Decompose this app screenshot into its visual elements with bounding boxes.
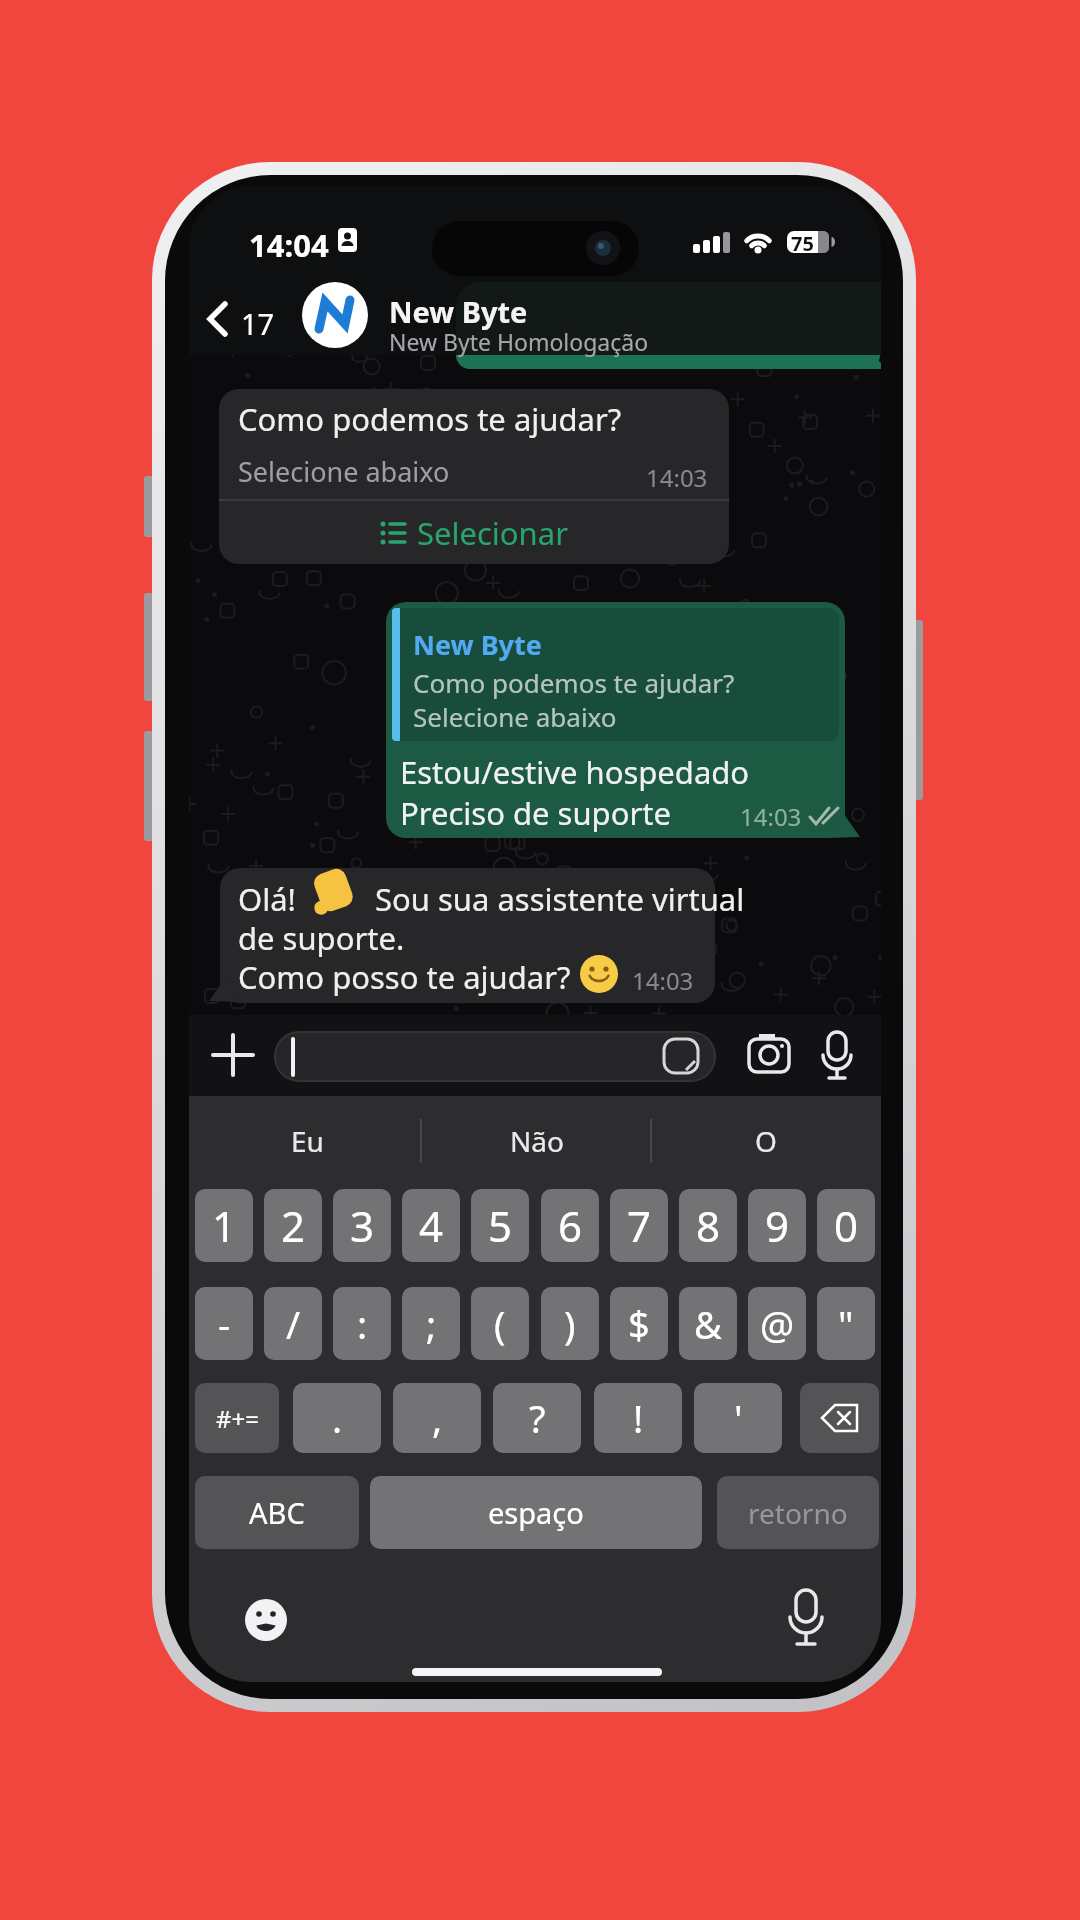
button[interactable]: ABC — [195, 1476, 359, 1549]
button[interactable]: - — [195, 1287, 253, 1360]
button[interactable] — [220, 868, 715, 1003]
button[interactable]: espaço — [370, 1476, 702, 1549]
staticText: Selecione abaixo — [413, 699, 617, 734]
staticText: espaço — [488, 1493, 584, 1532]
staticText: / — [286, 1298, 301, 1350]
button[interactable]: ? — [493, 1383, 581, 1453]
button[interactable] — [781, 1590, 831, 1646]
button[interactable]: 9 — [748, 1189, 806, 1262]
staticText: 0 — [834, 1197, 859, 1254]
button[interactable] — [741, 1031, 796, 1081]
staticText: New Byte Homologação — [389, 326, 649, 357]
button[interactable] — [302, 282, 368, 348]
button[interactable]: " — [817, 1287, 875, 1360]
button[interactable] — [800, 1383, 879, 1453]
staticText: . — [332, 1392, 343, 1444]
staticText: 14:03 — [632, 964, 694, 997]
button[interactable]: #+= — [195, 1383, 279, 1453]
staticText: Selecione abaixo — [238, 453, 450, 490]
staticText: Preciso de suporte — [400, 792, 671, 834]
button[interactable]: $ — [610, 1287, 668, 1360]
staticText: Eu — [291, 1122, 324, 1160]
staticText: 1 — [212, 1197, 237, 1254]
button[interactable]: 7 — [610, 1189, 668, 1262]
staticText: Não — [510, 1122, 564, 1160]
button[interactable]: Eu — [247, 1119, 367, 1163]
staticText: New Byte — [413, 626, 542, 663]
staticText: ' — [734, 1392, 743, 1444]
staticText: Como podemos te ajudar? — [413, 665, 735, 700]
staticText: 14:04 — [249, 224, 329, 266]
staticText: Selecionar — [417, 512, 568, 554]
button[interactable]: / — [264, 1287, 322, 1360]
button[interactable] — [274, 1031, 716, 1082]
button[interactable]: O — [706, 1119, 826, 1163]
staticText: & — [694, 1298, 722, 1350]
button[interactable]: 5 — [471, 1189, 529, 1262]
staticText: O — [755, 1122, 777, 1160]
staticText: 2 — [281, 1197, 306, 1254]
button[interactable]: ! — [594, 1383, 682, 1453]
button[interactable]: 4 — [402, 1189, 460, 1262]
button[interactable]: . — [293, 1383, 381, 1453]
button[interactable] — [814, 1031, 864, 1081]
button[interactable]: Não — [477, 1119, 597, 1163]
button[interactable]: 8 — [679, 1189, 737, 1262]
button[interactable]: , — [393, 1383, 481, 1453]
staticText: ; — [426, 1298, 437, 1350]
staticText: #+= — [216, 1402, 259, 1435]
button[interactable]: retorno — [717, 1476, 879, 1549]
staticText: retorno — [748, 1494, 848, 1532]
staticText: Como podemos te ajudar? — [238, 398, 622, 440]
staticText: Estou/estive hospedado — [400, 751, 750, 793]
staticText: ( — [494, 1298, 506, 1350]
staticText: 75 — [791, 230, 814, 257]
button[interactable]: ( — [471, 1287, 529, 1360]
staticText: , — [432, 1392, 443, 1444]
staticText: New Byte — [389, 292, 528, 331]
staticText: 4 — [419, 1197, 444, 1254]
staticText: 14:03 — [740, 800, 802, 833]
staticText: : — [357, 1298, 368, 1350]
staticText: Sou sua assistente virtual — [375, 878, 745, 920]
staticText: " — [838, 1298, 854, 1350]
staticText: de suporte. — [238, 917, 405, 959]
staticText: 6 — [558, 1197, 583, 1254]
staticText: ) — [564, 1298, 576, 1350]
staticText: ? — [529, 1392, 546, 1444]
button[interactable] — [386, 602, 845, 838]
button[interactable]: 1 — [195, 1189, 253, 1262]
staticText: 5 — [488, 1197, 513, 1254]
button[interactable]: ) — [541, 1287, 599, 1360]
staticText: $ — [628, 1298, 650, 1350]
staticText: @ — [760, 1298, 795, 1350]
button[interactable]: Selecionar — [219, 501, 729, 564]
button[interactable]: 2 — [264, 1189, 322, 1262]
staticText: Olá! — [238, 878, 296, 920]
staticText: 9 — [765, 1197, 790, 1254]
staticText: Como posso te ajudar? — [238, 956, 571, 998]
staticText: ! — [633, 1392, 644, 1444]
button[interactable]: 3 — [333, 1189, 391, 1262]
button[interactable]: : — [333, 1287, 391, 1360]
staticText: 3 — [350, 1197, 375, 1254]
button[interactable]: @ — [748, 1287, 806, 1360]
staticText: 14:03 — [646, 461, 708, 494]
staticText: 17 — [241, 304, 275, 343]
button[interactable]: 6 — [541, 1189, 599, 1262]
button[interactable] — [219, 389, 729, 564]
staticText: - — [218, 1298, 231, 1350]
staticText: ABC — [249, 1493, 305, 1532]
button[interactable]: & — [679, 1287, 737, 1360]
button[interactable]: ; — [402, 1287, 460, 1360]
button[interactable]: ' — [694, 1383, 782, 1453]
button[interactable] — [209, 1031, 259, 1081]
button[interactable]: 0 — [817, 1189, 875, 1262]
staticText: 8 — [696, 1197, 721, 1254]
staticText: 7 — [627, 1197, 652, 1254]
button[interactable] — [241, 1595, 291, 1645]
